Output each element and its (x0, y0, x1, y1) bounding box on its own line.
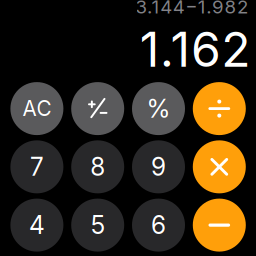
staticText: 8 (90, 152, 105, 182)
button[interactable]: 6 (132, 199, 185, 252)
staticText: % (146, 93, 170, 124)
staticText: AC (22, 96, 51, 121)
button[interactable]: % (132, 82, 185, 135)
button[interactable]: Subtract (193, 199, 246, 252)
button[interactable]: Divide (193, 82, 246, 135)
staticText: 1.162 (140, 20, 250, 78)
staticText: 3.144−1.982 (135, 0, 248, 18)
button[interactable]: 8 (71, 140, 124, 193)
staticText: 9 (151, 152, 166, 182)
button[interactable]: 5 (71, 199, 124, 252)
staticText: 7 (30, 152, 44, 182)
button[interactable]: Toggle sign (71, 82, 124, 135)
staticText: 4 (29, 210, 45, 240)
staticText: 5 (91, 210, 105, 240)
button[interactable]: AC (10, 82, 63, 135)
button[interactable]: 7 (10, 140, 63, 193)
button[interactable]: 4 (10, 199, 63, 252)
button[interactable]: Multiply (193, 140, 246, 193)
button[interactable]: 9 (132, 140, 185, 193)
staticText: 6 (151, 210, 166, 240)
